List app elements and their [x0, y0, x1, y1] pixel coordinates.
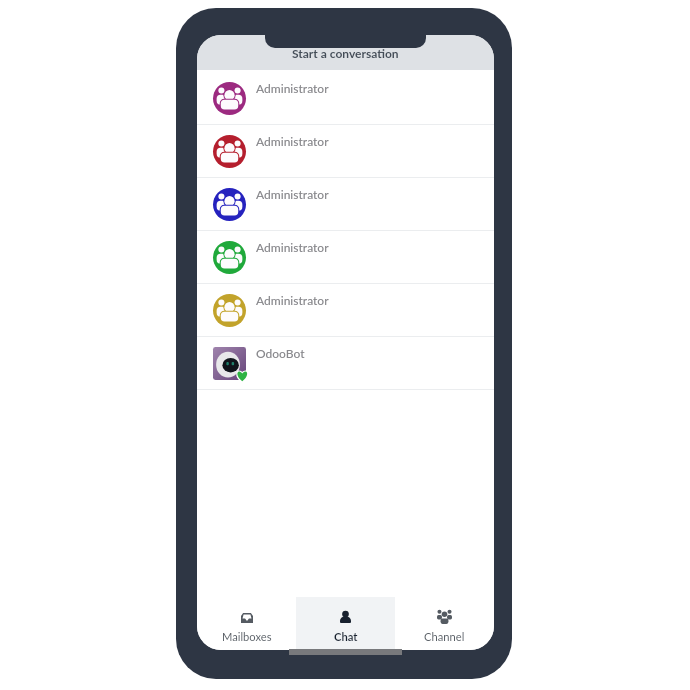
button[interactable]: Chat [296, 597, 395, 650]
button[interactable]: Administrator [197, 72, 494, 124]
button[interactable]: Administrator [197, 284, 494, 336]
staticText: Administrator [256, 81, 329, 95]
staticText: Administrator [256, 240, 329, 254]
button[interactable]: Channel [395, 597, 494, 650]
staticText: Channel [424, 630, 465, 643]
staticText: Start a conversation [292, 46, 399, 60]
staticText: Chat [334, 630, 358, 643]
button[interactable]: Administrator [197, 125, 494, 177]
staticText: Administrator [256, 293, 329, 307]
button[interactable]: Administrator [197, 231, 494, 283]
button[interactable]: Administrator [197, 178, 494, 230]
staticText: OdooBot [256, 346, 305, 360]
staticText: Administrator [256, 187, 329, 201]
staticText: Administrator [256, 134, 329, 148]
staticText: Mailboxes [222, 630, 272, 643]
button[interactable]: OdooBot [197, 337, 494, 389]
button[interactable]: Mailboxes [197, 597, 296, 650]
